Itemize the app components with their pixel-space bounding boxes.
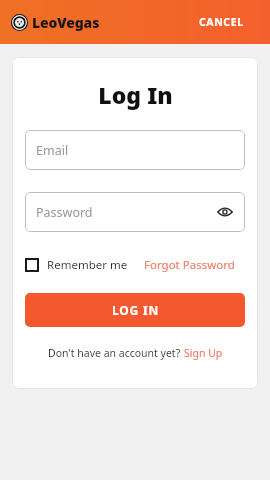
- staticText: Password: [36, 204, 93, 221]
- staticText: Email: [36, 142, 69, 159]
- staticText: LeoVegas: [32, 13, 100, 32]
- staticText: LOG IN: [112, 302, 159, 318]
- staticText: Log In: [98, 79, 173, 110]
- button[interactable]: Email: [25, 130, 245, 170]
- button[interactable]: Forgot Password: [144, 254, 235, 276]
- button[interactable]: LeoVegas home: [9, 11, 102, 34]
- staticText: Don't have an account yet?: [48, 346, 181, 360]
- staticText: Sign Up: [184, 346, 223, 360]
- button[interactable]: Password: [25, 192, 245, 232]
- button[interactable]: Sign Up: [184, 344, 223, 362]
- button[interactable]: Remember me: [25, 254, 128, 276]
- button[interactable]: Show password: [214, 201, 236, 223]
- button[interactable]: LOG IN: [25, 293, 245, 327]
- staticText: Remember me: [47, 257, 128, 273]
- staticText: CANCEL: [199, 15, 244, 29]
- staticText: Forgot Password: [144, 257, 235, 273]
- button[interactable]: CANCEL: [195, 11, 248, 33]
